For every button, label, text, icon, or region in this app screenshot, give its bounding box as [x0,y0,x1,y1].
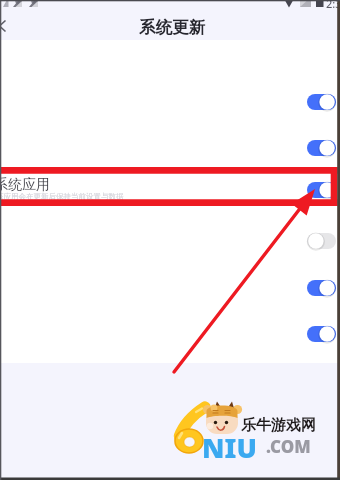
button[interactable]: Switch on [307,326,336,342]
staticText: 该应用会在更新后保持当前设置与数据 [0,192,124,201]
staticText: .COM [266,435,311,458]
staticText: 系统应用 [0,176,50,194]
staticText: NIU [202,429,257,466]
button[interactable]: Back [0,14,13,40]
button[interactable]: Switch on [307,94,336,110]
staticText: 2:31 [326,0,340,11]
staticText: 乐牛游戏网 [241,416,316,435]
button[interactable]: 系统应用 [0,176,134,202]
button[interactable]: Switch off [307,233,336,249]
button[interactable]: Switch on [307,182,336,198]
button[interactable]: Switch on [307,280,336,296]
staticText: 系统更新 [139,17,205,38]
button[interactable]: Switch on [307,140,336,156]
